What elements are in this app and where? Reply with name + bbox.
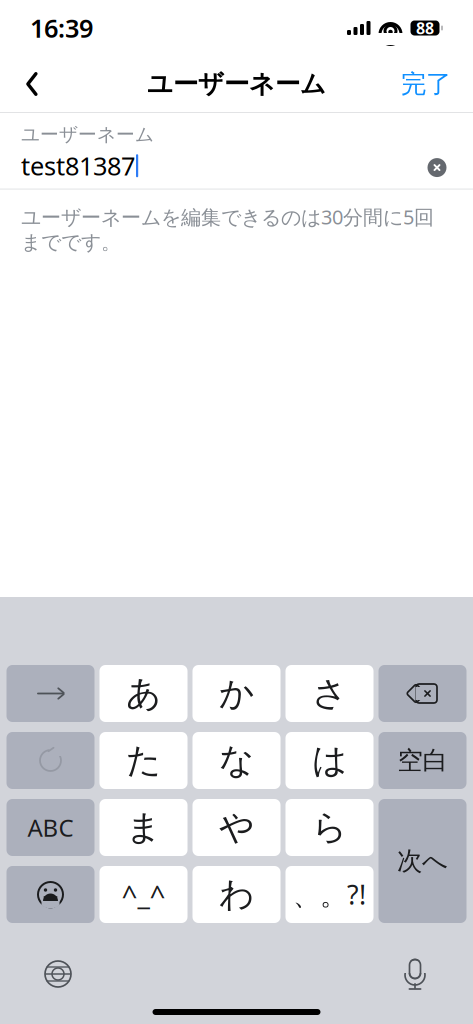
staticText: ユーザーネームを編集できるのは30分間に5回までです。 — [21, 204, 434, 255]
staticText: 88 — [416, 17, 434, 39]
staticText: 16:39 — [30, 11, 93, 45]
button[interactable]: 完了 — [387, 56, 465, 112]
button[interactable]: や — [192, 799, 280, 856]
button[interactable]: Back — [8, 56, 56, 112]
button[interactable]: ABC — [6, 799, 94, 856]
staticText: あ — [126, 672, 161, 715]
staticText: 空白 — [397, 745, 447, 776]
staticText: ま — [126, 806, 161, 849]
button[interactable]: わ — [192, 866, 280, 923]
staticText: 、。?! — [293, 877, 366, 912]
staticText: ^_^ — [121, 876, 165, 913]
button[interactable]: Undo — [6, 732, 94, 789]
staticText: ユーザーネーム — [21, 123, 154, 146]
staticText: 完了 — [401, 68, 451, 99]
button[interactable]: か — [192, 665, 280, 722]
staticText: わ — [219, 873, 254, 916]
staticText: ら — [312, 806, 347, 849]
staticText: test81387 — [21, 149, 135, 182]
button[interactable]: あ — [99, 665, 187, 722]
button[interactable]: Dictation — [387, 949, 443, 999]
button[interactable]: た — [99, 732, 187, 789]
button[interactable]: 、。?! — [285, 866, 373, 923]
staticText: や — [219, 806, 254, 849]
staticText: は — [312, 739, 347, 782]
button[interactable]: 次へ — [378, 799, 466, 923]
staticText: さ — [312, 672, 347, 715]
button[interactable]: 空白 — [378, 732, 466, 789]
staticText: ABC — [27, 812, 73, 843]
button[interactable]: さ — [285, 665, 373, 722]
button[interactable]: Emoji — [6, 866, 94, 923]
button[interactable]: ま — [99, 799, 187, 856]
staticText: か — [219, 672, 254, 715]
button[interactable]: Move cursor right — [6, 665, 94, 722]
button[interactable]: ^_^ — [99, 866, 187, 923]
button[interactable]: は — [285, 732, 373, 789]
staticText: ユーザーネーム — [147, 68, 326, 99]
staticText: 次へ — [397, 845, 448, 876]
button[interactable]: Clear text — [422, 153, 452, 183]
button[interactable]: な — [192, 732, 280, 789]
staticText: な — [219, 739, 254, 782]
button[interactable]: ら — [285, 799, 373, 856]
button[interactable]: Delete — [378, 665, 466, 722]
staticText: た — [126, 739, 161, 782]
button[interactable]: Next keyboard — [30, 949, 86, 999]
